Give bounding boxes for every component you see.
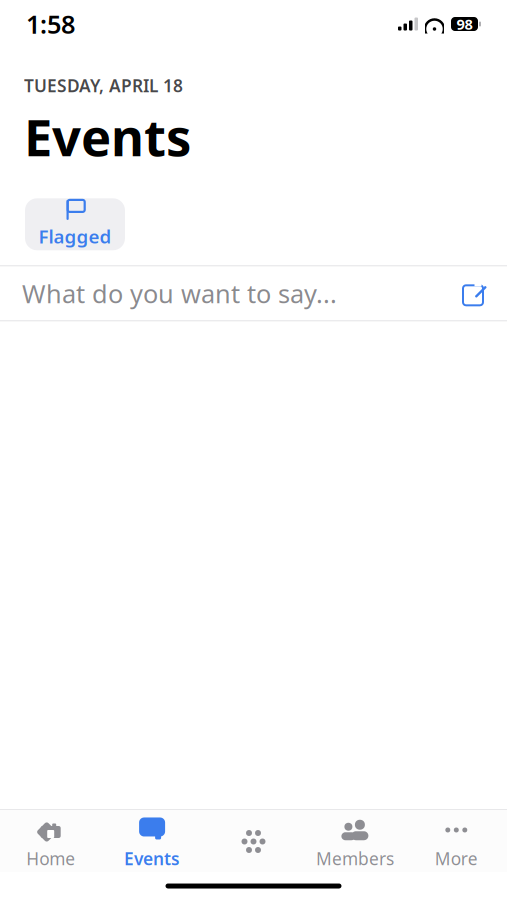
staticText: Events: [24, 103, 191, 170]
staticText: Members: [316, 847, 394, 870]
staticText: 98: [456, 14, 472, 34]
staticText: What do you want to say...: [22, 276, 337, 310]
button[interactable]: Events: [101, 816, 203, 872]
staticText: TUESDAY, APRIL 18: [24, 74, 183, 97]
staticText: Flagged: [38, 224, 111, 249]
staticText: Home: [26, 847, 75, 870]
button[interactable]: Groups: [203, 816, 304, 872]
button[interactable]: Home: [0, 816, 101, 872]
staticText: Events: [124, 847, 180, 870]
button[interactable]: More: [406, 816, 507, 872]
button[interactable]: Members: [304, 816, 406, 872]
button[interactable]: What do you want to say...: [0, 266, 507, 320]
staticText: 1:58: [26, 7, 75, 41]
staticText: More: [435, 847, 478, 870]
button[interactable]: Flagged: [25, 198, 125, 250]
